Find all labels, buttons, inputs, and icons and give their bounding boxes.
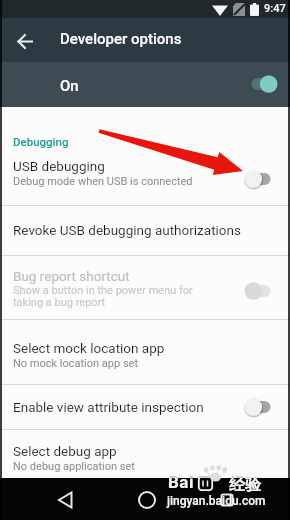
staticText: Debug mode when USB is connected (13, 175, 193, 188)
staticText: Revoke USB debugging authorizations (13, 222, 241, 238)
staticText: Enable view attribute inspection (13, 399, 204, 415)
button[interactable] (0, 385, 290, 429)
staticText: USB debugging (13, 158, 105, 174)
staticText: No debug application set (13, 460, 135, 473)
staticText: taking a bug report (13, 296, 106, 309)
staticText: Debugging (13, 135, 69, 148)
staticText: Select mock location app (13, 340, 165, 356)
staticText: 经验 (229, 478, 261, 495)
staticText: Bug report shortcut (13, 268, 130, 284)
staticText: Bai (168, 478, 194, 492)
button[interactable] (136, 489, 158, 511)
staticText: Show a button in the power menu for (13, 284, 193, 297)
staticText: Bai (168, 472, 194, 492)
staticText: No mock location app set (13, 357, 139, 370)
button[interactable] (218, 491, 236, 509)
button[interactable] (13, 28, 39, 54)
button[interactable] (0, 256, 290, 319)
button[interactable] (55, 489, 75, 510)
button[interactable] (0, 62, 290, 107)
staticText: Developer options (60, 30, 182, 48)
button[interactable] (0, 206, 290, 255)
staticText: 经验 (229, 475, 261, 495)
button[interactable] (0, 320, 290, 384)
button[interactable] (0, 430, 290, 478)
staticText: Select debug app (13, 443, 117, 459)
staticText: On (60, 77, 79, 95)
staticText: jingyan.baidu.com (167, 494, 266, 508)
button[interactable] (0, 150, 290, 205)
staticText: 9:47 (264, 2, 286, 15)
